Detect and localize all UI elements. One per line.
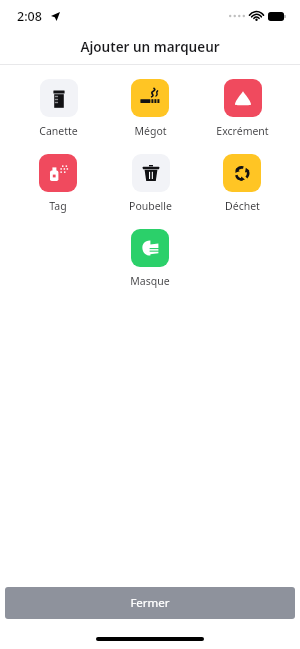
staticText: Excrément bbox=[216, 124, 269, 138]
other: Déchet bbox=[223, 154, 261, 192]
button[interactable]: Masque bbox=[128, 229, 172, 288]
staticText: Poubelle bbox=[129, 199, 172, 213]
staticText: Canette bbox=[39, 124, 78, 138]
other: Tag bbox=[39, 154, 77, 192]
staticText: 2:08 bbox=[17, 8, 42, 25]
button[interactable]: Tag bbox=[37, 154, 79, 213]
button[interactable]: Poubelle bbox=[127, 154, 174, 213]
other: Masque bbox=[131, 229, 169, 267]
button[interactable]: Canette bbox=[37, 79, 80, 138]
staticText: Masque bbox=[130, 274, 170, 288]
button[interactable]: Fermer bbox=[5, 587, 295, 619]
staticText: Tag bbox=[49, 199, 67, 213]
other: Poubelle bbox=[132, 154, 170, 192]
other: Excrément bbox=[224, 79, 262, 117]
staticText: Déchet bbox=[225, 199, 260, 213]
other: Canette bbox=[40, 79, 78, 117]
staticText: Mégot bbox=[134, 124, 167, 138]
button[interactable]: Mégot bbox=[129, 79, 171, 138]
button[interactable]: Déchet bbox=[221, 154, 263, 213]
other: Mégot bbox=[131, 79, 169, 117]
staticText: Ajouter un marqueur bbox=[80, 38, 220, 56]
staticText: Fermer bbox=[130, 595, 170, 611]
button[interactable]: Excrément bbox=[214, 79, 271, 138]
